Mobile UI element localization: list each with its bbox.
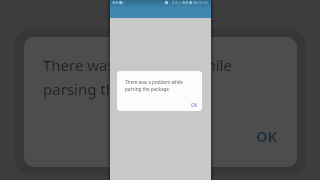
staticText: parsing the package.	[125, 86, 171, 92]
staticText: There was a problem while	[43, 55, 232, 75]
button[interactable]: There was a problem while	[117, 71, 202, 111]
button[interactable]: There was a problem while	[24, 37, 297, 167]
other: Status bar	[110, 0, 211, 18]
staticText: OK	[191, 102, 198, 108]
staticText: parsing the package.	[43, 79, 191, 99]
staticText: There was a problem while	[125, 79, 183, 85]
staticText: OK	[256, 126, 278, 146]
